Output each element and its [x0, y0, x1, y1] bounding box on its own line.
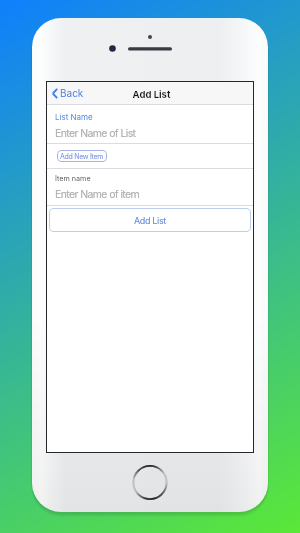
- staticText: Enter Name of List: [55, 127, 136, 140]
- staticText: Enter Name of item: [55, 188, 140, 201]
- staticText: Add List: [134, 215, 166, 226]
- button[interactable]: Add New Item: [57, 150, 107, 162]
- staticText: List Name: [55, 112, 93, 122]
- button[interactable]: Back: [50, 85, 89, 101]
- staticText: Add List: [129, 89, 174, 100]
- staticText: Item name: [55, 174, 91, 183]
- staticText: Back: [60, 87, 84, 99]
- button[interactable]: Add List: [49, 208, 251, 232]
- staticText: Add New Item: [60, 152, 104, 160]
